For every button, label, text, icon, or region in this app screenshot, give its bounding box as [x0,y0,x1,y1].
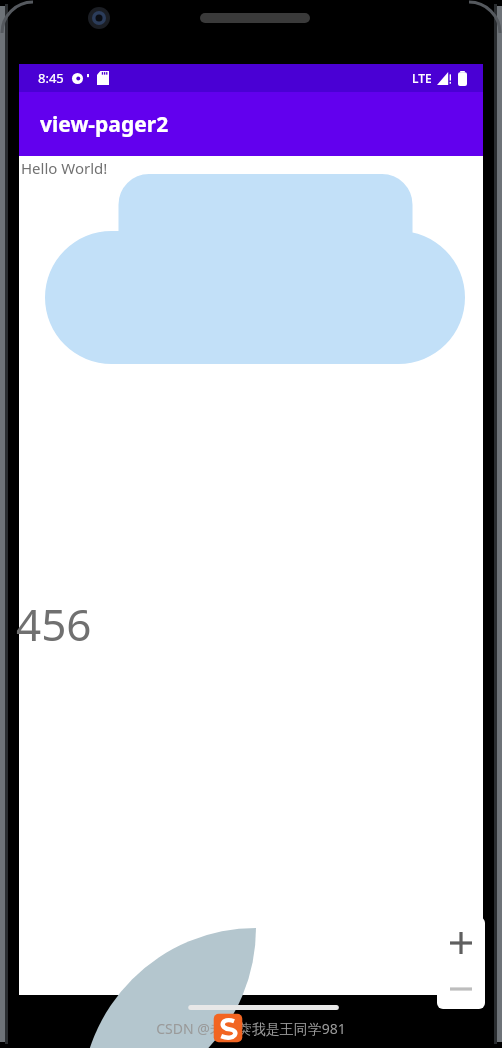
staticText: CSDN @老师葖我是王同学981 [156,1019,346,1038]
button[interactable]: Zoom in [437,917,485,969]
staticText: 8:45 [38,69,64,87]
button[interactable]: Hello World! [19,156,483,995]
button[interactable]: view-pager2 [19,92,483,156]
staticText: 456 [16,594,92,654]
button[interactable]: Zoom out [437,969,485,1009]
staticText: Hello World! [21,158,108,178]
staticText: LTE [412,70,432,86]
staticText: view-pager2 [40,110,169,139]
